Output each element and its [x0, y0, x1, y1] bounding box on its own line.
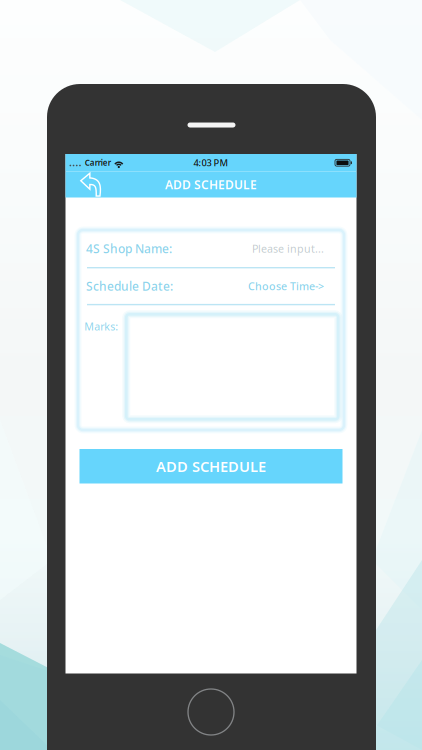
staticText: 4S Shop Name: [86, 240, 172, 256]
staticText: ADD SCHEDULE [156, 456, 266, 476]
staticText: Please input... [252, 241, 324, 256]
staticText: Marks: [84, 319, 118, 333]
button[interactable]: 4S Shop Name: [78, 230, 344, 267]
button[interactable]: Marks [126, 314, 338, 419]
button[interactable]: ADD SCHEDULE [79, 449, 342, 483]
staticText: 4:03 PM [193, 157, 228, 169]
staticText: Schedule Date: [86, 278, 173, 294]
staticText: Choose Time-> [248, 279, 324, 293]
staticText: ADD SCHEDULE [165, 176, 257, 192]
button[interactable]: Back [65, 172, 111, 197]
staticText: Carrier [85, 157, 111, 168]
button[interactable]: Schedule Date: [78, 268, 344, 304]
